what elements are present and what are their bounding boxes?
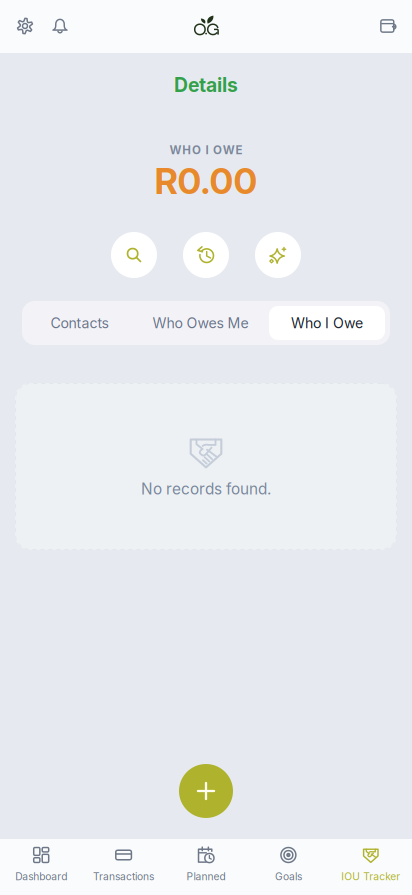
button[interactable]: Goals	[247, 839, 330, 895]
button[interactable]: History	[183, 232, 229, 278]
button[interactable]: Transactions	[82, 839, 165, 895]
button[interactable]: Search	[111, 232, 157, 278]
button[interactable]: Insights	[255, 232, 301, 278]
staticText: R0.00	[154, 159, 257, 203]
staticText: Contacts	[50, 314, 108, 331]
button[interactable]: Who Owes Me	[132, 306, 269, 340]
button[interactable]: Contacts	[27, 306, 132, 340]
staticText: IOU Tracker	[341, 870, 400, 883]
staticText: Who I Owe	[291, 314, 363, 331]
button[interactable]: Settings	[8, 9, 42, 43]
staticText: Transactions	[93, 870, 154, 883]
button[interactable]: Notifications	[43, 9, 77, 43]
staticText: Planned	[186, 870, 225, 883]
button[interactable]: Wallet	[371, 9, 405, 43]
staticText: Goals	[275, 870, 302, 883]
button[interactable]: Dashboard	[0, 839, 82, 895]
staticText: Details	[174, 73, 238, 97]
button[interactable]: Who I Owe	[269, 306, 385, 340]
staticText: Dashboard	[15, 870, 67, 883]
button[interactable]: IOU Tracker	[330, 839, 412, 895]
staticText: Who Owes Me	[152, 314, 248, 331]
button[interactable]: Planned	[165, 839, 247, 895]
staticText: WHO I OWE	[169, 143, 242, 157]
button[interactable]: Add record	[179, 764, 233, 818]
staticText: No records found.	[141, 480, 271, 498]
